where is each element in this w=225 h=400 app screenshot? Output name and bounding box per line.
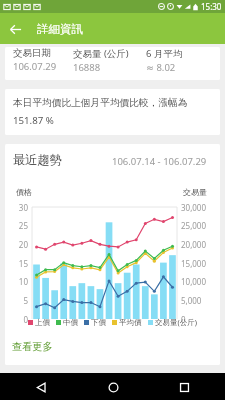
staticText: 平均價 [119,318,142,327]
staticText: 0 [5,314,28,325]
staticText: 20 [5,239,28,250]
staticText: 交易量 (公斤) [73,47,129,60]
staticText: 本日平均價比上個月平均價比較，漲幅為 [13,97,188,109]
staticText: 106.07.14 - 106.07.29 [112,155,207,168]
staticText: 25,000 [181,220,207,231]
staticText: 下價 [91,318,106,327]
staticText: 16888 [73,61,101,74]
staticText: 交易量 [183,187,207,197]
button[interactable]: Home [102,376,124,398]
staticText: 20,000 [181,239,207,250]
staticText: 交易量(公斤) [155,317,197,327]
staticText: 30,000 [181,202,207,213]
staticText: 上價 [35,318,50,327]
staticText: 5 [5,295,28,306]
staticText: 交易日期 [13,47,51,59]
staticText: 中價 [63,318,78,327]
button[interactable]: 查看更多 [5,334,220,361]
staticText: 查看更多 [12,340,53,353]
staticText: 5,000 [181,295,202,306]
staticText: 15 [5,258,28,269]
staticText: 10 [5,276,28,287]
staticText: 151.87 % [13,114,54,127]
staticText: 106.07.29 [13,60,57,73]
staticText: 價格 [16,187,32,197]
button[interactable]: Back [30,376,52,398]
staticText: 詳細資訊 [37,22,83,36]
staticText: 15,000 [181,258,207,269]
staticText: 30 [5,202,28,213]
staticText: 6 月平均 [146,47,183,60]
staticText: 15:30 [201,1,222,12]
button[interactable]: Back [0,14,30,44]
staticText: 25 [5,220,28,231]
button[interactable]: Recents [173,376,195,398]
staticText: 最近趨勢 [13,152,62,167]
staticText: 10,000 [181,276,207,287]
staticText: ≈ 8.02 [146,61,176,74]
staticText: 0 [181,314,186,325]
